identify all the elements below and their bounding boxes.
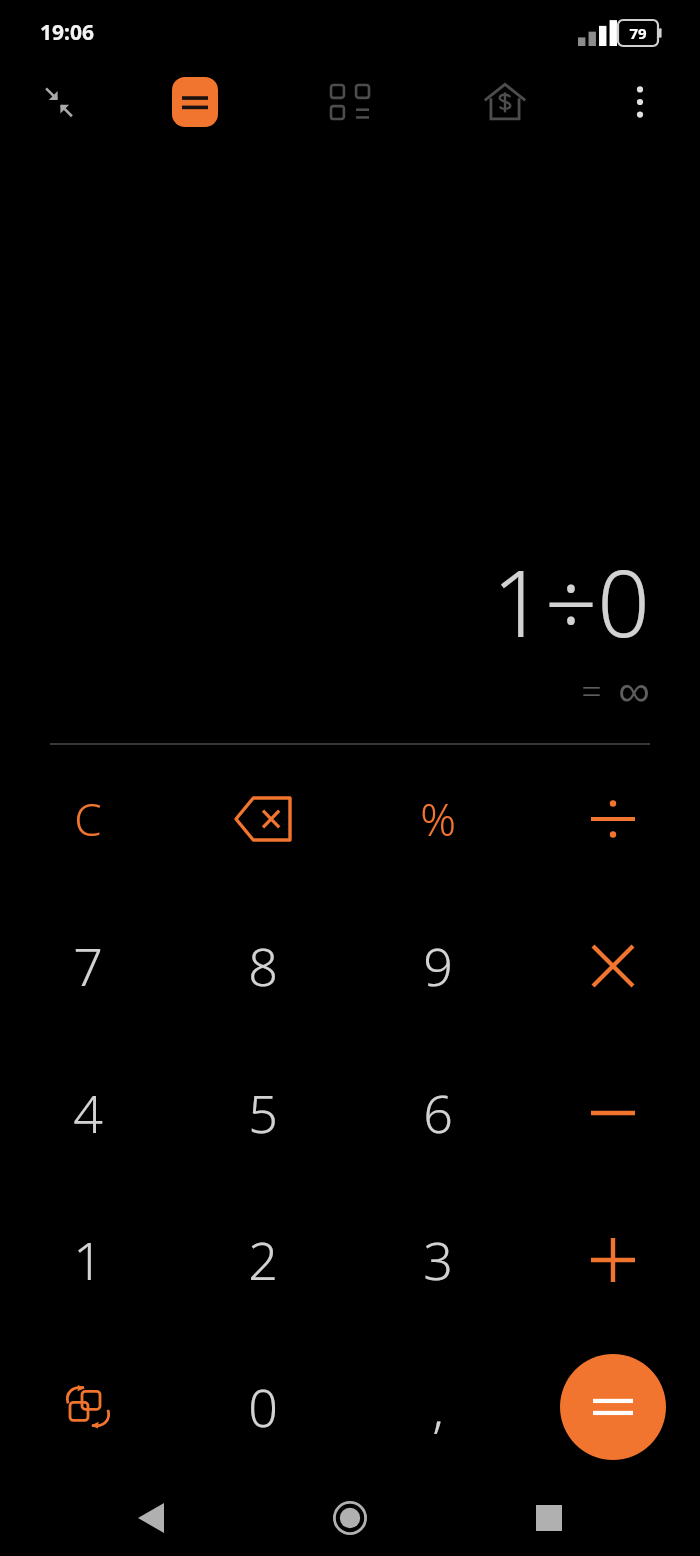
staticText: 5 [248,1077,278,1148]
button[interactable]: Collapse [28,74,90,130]
button[interactable]: C [0,745,175,892]
button[interactable]: 3 [350,1186,525,1333]
staticText: C [74,789,102,849]
button[interactable]: Multiply [525,892,700,1039]
button[interactable]: 1 [0,1186,175,1333]
staticText: = [581,666,602,715]
staticText: 9 [423,930,453,1001]
button[interactable]: 2 [175,1186,350,1333]
staticText: 1 [73,1224,103,1295]
button[interactable]: 7 [0,892,175,1039]
staticText: , [432,1371,444,1442]
button[interactable]: 6 [350,1039,525,1186]
button[interactable]: % [350,745,525,892]
button[interactable]: Home [302,1480,398,1556]
button[interactable]: 4 [0,1039,175,1186]
staticText: % [420,789,456,849]
button[interactable]: Mortgage [470,72,540,132]
button[interactable]: Recent apps [501,1480,597,1556]
button[interactable]: 9 [350,892,525,1039]
button[interactable]: 5 [175,1039,350,1186]
staticText: 0 [248,1371,278,1442]
staticText: 4 [73,1077,103,1148]
staticText: 8 [248,930,278,1001]
button[interactable]: Minus [525,1039,700,1186]
staticText: 19:06 [40,18,94,47]
button[interactable]: Backspace [175,745,350,892]
staticText: 2 [248,1224,278,1295]
button[interactable]: , [350,1333,525,1480]
staticText: 3 [423,1224,453,1295]
staticText: 6 [423,1077,453,1148]
button[interactable]: Calculator [160,72,230,132]
button[interactable]: Modes [315,74,385,130]
staticText: 79 [629,23,647,43]
button[interactable]: 8 [175,892,350,1039]
button[interactable]: Back [103,1480,199,1556]
button[interactable]: More options [608,74,672,130]
button[interactable]: 0 [175,1333,350,1480]
staticText: 1÷0 [492,539,650,664]
button[interactable]: Convert units [0,1333,175,1480]
button[interactable]: Equals [525,1333,700,1480]
staticText: ∞ [618,666,650,715]
staticText: 7 [73,930,103,1001]
button[interactable]: Divide [525,745,700,892]
button[interactable]: Plus [525,1186,700,1333]
